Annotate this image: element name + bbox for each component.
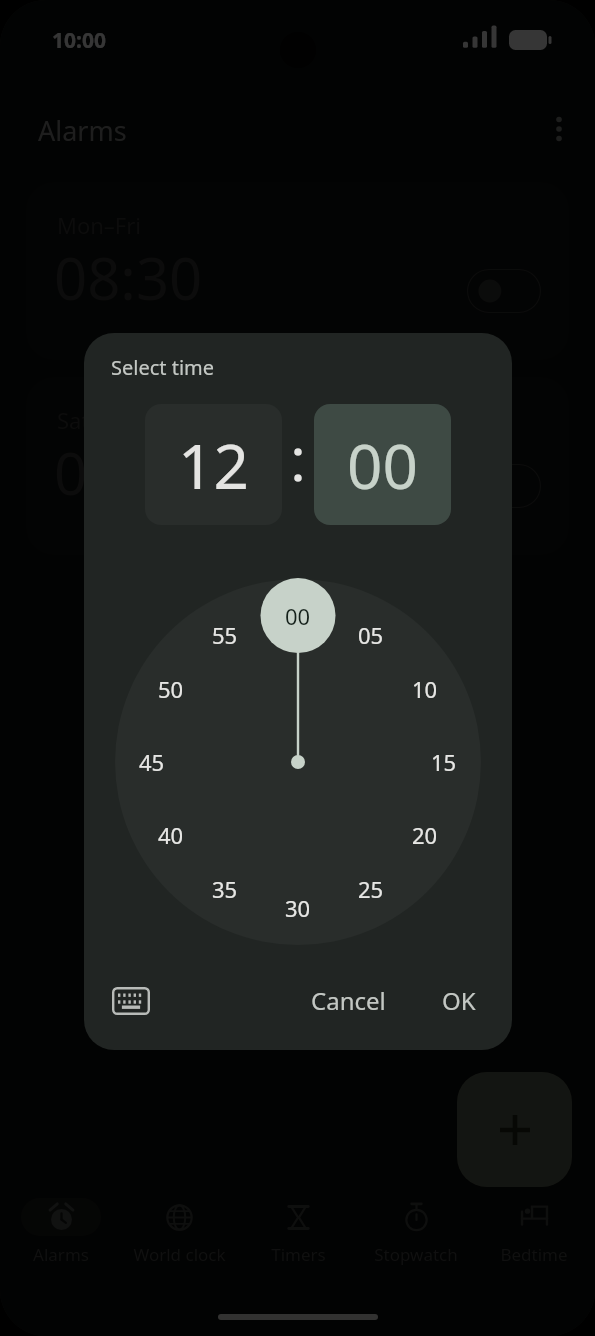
staticText: Stopwatch (374, 1243, 458, 1266)
staticText: 05 (358, 620, 384, 650)
staticText: Alarms (38, 112, 127, 149)
button[interactable]: Alarm toggle (467, 464, 541, 508)
staticText: 30 (285, 893, 311, 923)
button[interactable]: Mon–Fri (26, 182, 569, 360)
staticText: 10:00 (52, 26, 106, 55)
button[interactable]: More options (538, 108, 580, 150)
button[interactable]: Alarms (4, 1198, 118, 1266)
staticText: World clock (133, 1243, 226, 1266)
staticText: 00 (347, 423, 418, 507)
staticText: Sat (57, 405, 90, 435)
staticText: Timers (271, 1243, 326, 1266)
staticText: OK (442, 984, 476, 1017)
button[interactable]: 00 (314, 404, 451, 525)
button[interactable]: Cancel (290, 966, 406, 1034)
button[interactable]: OK (420, 966, 498, 1034)
staticText: 15 (431, 747, 457, 777)
button[interactable]: Add alarm (457, 1072, 572, 1187)
staticText: Cancel (311, 984, 386, 1017)
staticText: 09:45 (54, 433, 203, 512)
staticText: Alarms (33, 1243, 89, 1266)
button[interactable]: 12 (145, 404, 282, 525)
staticText: 45 (139, 747, 165, 777)
button[interactable]: World clock (122, 1198, 236, 1266)
staticText: 55 (212, 620, 238, 650)
staticText: 50 (158, 674, 184, 704)
staticText: 35 (212, 874, 238, 904)
staticText: Bedtime (500, 1243, 568, 1266)
staticText: 40 (158, 820, 184, 850)
staticText: Select time (111, 354, 215, 381)
staticText: 00 (285, 601, 311, 631)
staticText: 08:30 (54, 238, 203, 317)
button[interactable]: Switch to text input (104, 974, 158, 1028)
staticText: 10 (412, 674, 438, 704)
staticText: 20 (412, 820, 438, 850)
button[interactable]: Sat (26, 377, 569, 555)
staticText: 25 (358, 874, 384, 904)
staticText: 12 (178, 423, 249, 507)
